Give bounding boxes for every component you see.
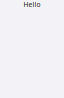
staticText: Hello [23,0,40,9]
